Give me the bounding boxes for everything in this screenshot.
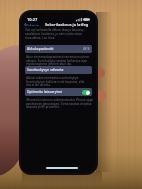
button[interactable]: Suorituskyvyn valvonta — [25, 66, 92, 74]
staticText: Suorituskyvyn valvonta — [27, 68, 64, 72]
staticText: iPhonesi kulumisen vahentamiseksi iPhone… — [26, 98, 94, 109]
staticText: Takaisin — [26, 23, 40, 26]
staticText: Sokerilaakeus ja latfag — [45, 22, 89, 27]
button[interactable]: Takaisin — [23, 22, 41, 27]
staticText: 10:27 — [27, 17, 38, 22]
staticText: Akkukapasiteetti — [27, 47, 54, 51]
button[interactable]: Optimoitu latausrytmi — [25, 88, 92, 96]
staticText: 46 % — [83, 47, 90, 51]
staticText: Akun enimmaiskapasiteetti verrattuna uut… — [26, 55, 90, 66]
staticText: Voit nyt tarkastella akkusi tilaa ja lat… — [25, 28, 83, 40]
staticText: Akkusi tukee normaalia suorituskykya. Su… — [26, 76, 85, 87]
button[interactable]: Optimoitu latausrytmi — [82, 90, 90, 95]
staticText: Optimoitu latausrytmi — [27, 90, 62, 94]
button[interactable]: Akkukapasiteetti — [25, 45, 92, 53]
